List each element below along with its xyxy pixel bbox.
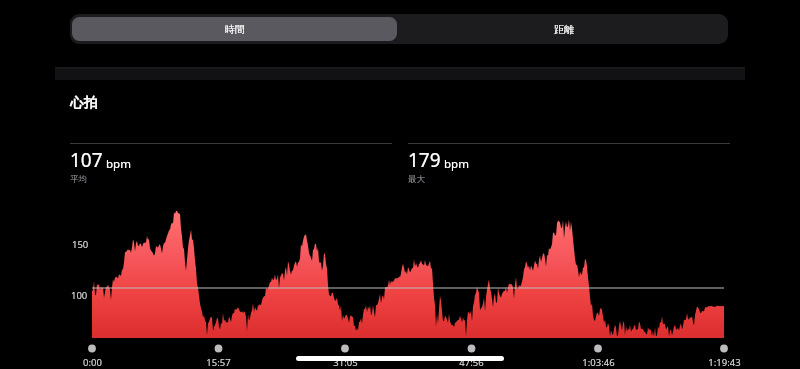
staticText: 0:00 (83, 356, 102, 369)
staticText: 平均 (70, 174, 87, 185)
staticText: 15:57 (206, 356, 231, 369)
other: Home indicator (296, 356, 504, 361)
staticText: bpm (444, 156, 469, 172)
staticText: 1:19:43 (708, 356, 741, 369)
staticText: 47:56 (459, 356, 484, 369)
staticText: 最大 (408, 174, 425, 185)
button[interactable]: 時間 (72, 17, 397, 41)
staticText: 距離 (554, 23, 574, 36)
staticText: 心拍 (70, 94, 97, 111)
staticText: 1:03:46 (582, 356, 615, 369)
button[interactable]: 距離 (399, 14, 728, 44)
staticText: 時間 (225, 23, 245, 36)
staticText: 107 (70, 147, 103, 173)
staticText: 179 (408, 147, 441, 173)
staticText: bpm (106, 156, 131, 172)
staticText: 150 (72, 238, 89, 251)
staticText: 100 (71, 289, 88, 302)
button[interactable]: 107 (70, 143, 392, 185)
staticText: 31:05 (333, 356, 358, 369)
button[interactable]: 179 (408, 143, 730, 185)
